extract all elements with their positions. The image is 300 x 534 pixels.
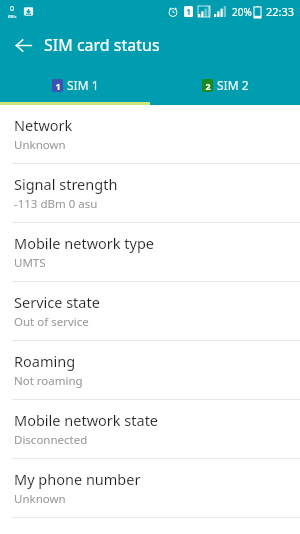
button[interactable]: Network — [0, 105, 300, 163]
staticText: Network — [14, 115, 73, 135]
button[interactable]: 2 — [150, 68, 300, 102]
button[interactable]: My phone number — [0, 459, 300, 517]
staticText: 1 — [186, 6, 191, 17]
button[interactable]: Mobile network type — [0, 223, 300, 281]
button[interactable]: Mobile network state — [0, 400, 300, 458]
staticText: UMTS — [14, 255, 46, 271]
staticText: Signal strength — [14, 174, 118, 194]
staticText: Mobile network state — [14, 410, 159, 430]
staticText: SIM 2 — [217, 77, 249, 93]
staticText: Mobile network type — [14, 233, 155, 253]
staticText: SIM card status — [44, 34, 160, 56]
staticText: 20% — [232, 5, 252, 19]
staticText: 1 — [55, 80, 61, 92]
button[interactable]: Roaming — [0, 341, 300, 399]
staticText: Roaming — [14, 351, 76, 371]
staticText: SIM 1 — [67, 77, 99, 93]
staticText: KB/s — [8, 14, 17, 19]
button[interactable]: Service state — [0, 282, 300, 340]
button[interactable]: Navigate up — [4, 26, 42, 64]
staticText: Unknown — [14, 137, 66, 153]
staticText: Unknown — [14, 491, 66, 507]
staticText: Out of service — [14, 314, 89, 330]
staticText: Not roaming — [14, 373, 83, 389]
staticText: My phone number — [14, 469, 141, 489]
staticText: Service state — [14, 292, 100, 312]
staticText: -113 dBm 0 asu — [14, 196, 98, 212]
staticText: 2 — [205, 80, 211, 92]
staticText: 22:33 — [266, 4, 295, 19]
button[interactable]: 1 — [0, 68, 150, 102]
button[interactable]: Signal strength — [0, 164, 300, 222]
staticText: 0 — [10, 4, 15, 14]
staticText: Disconnected — [14, 432, 88, 448]
